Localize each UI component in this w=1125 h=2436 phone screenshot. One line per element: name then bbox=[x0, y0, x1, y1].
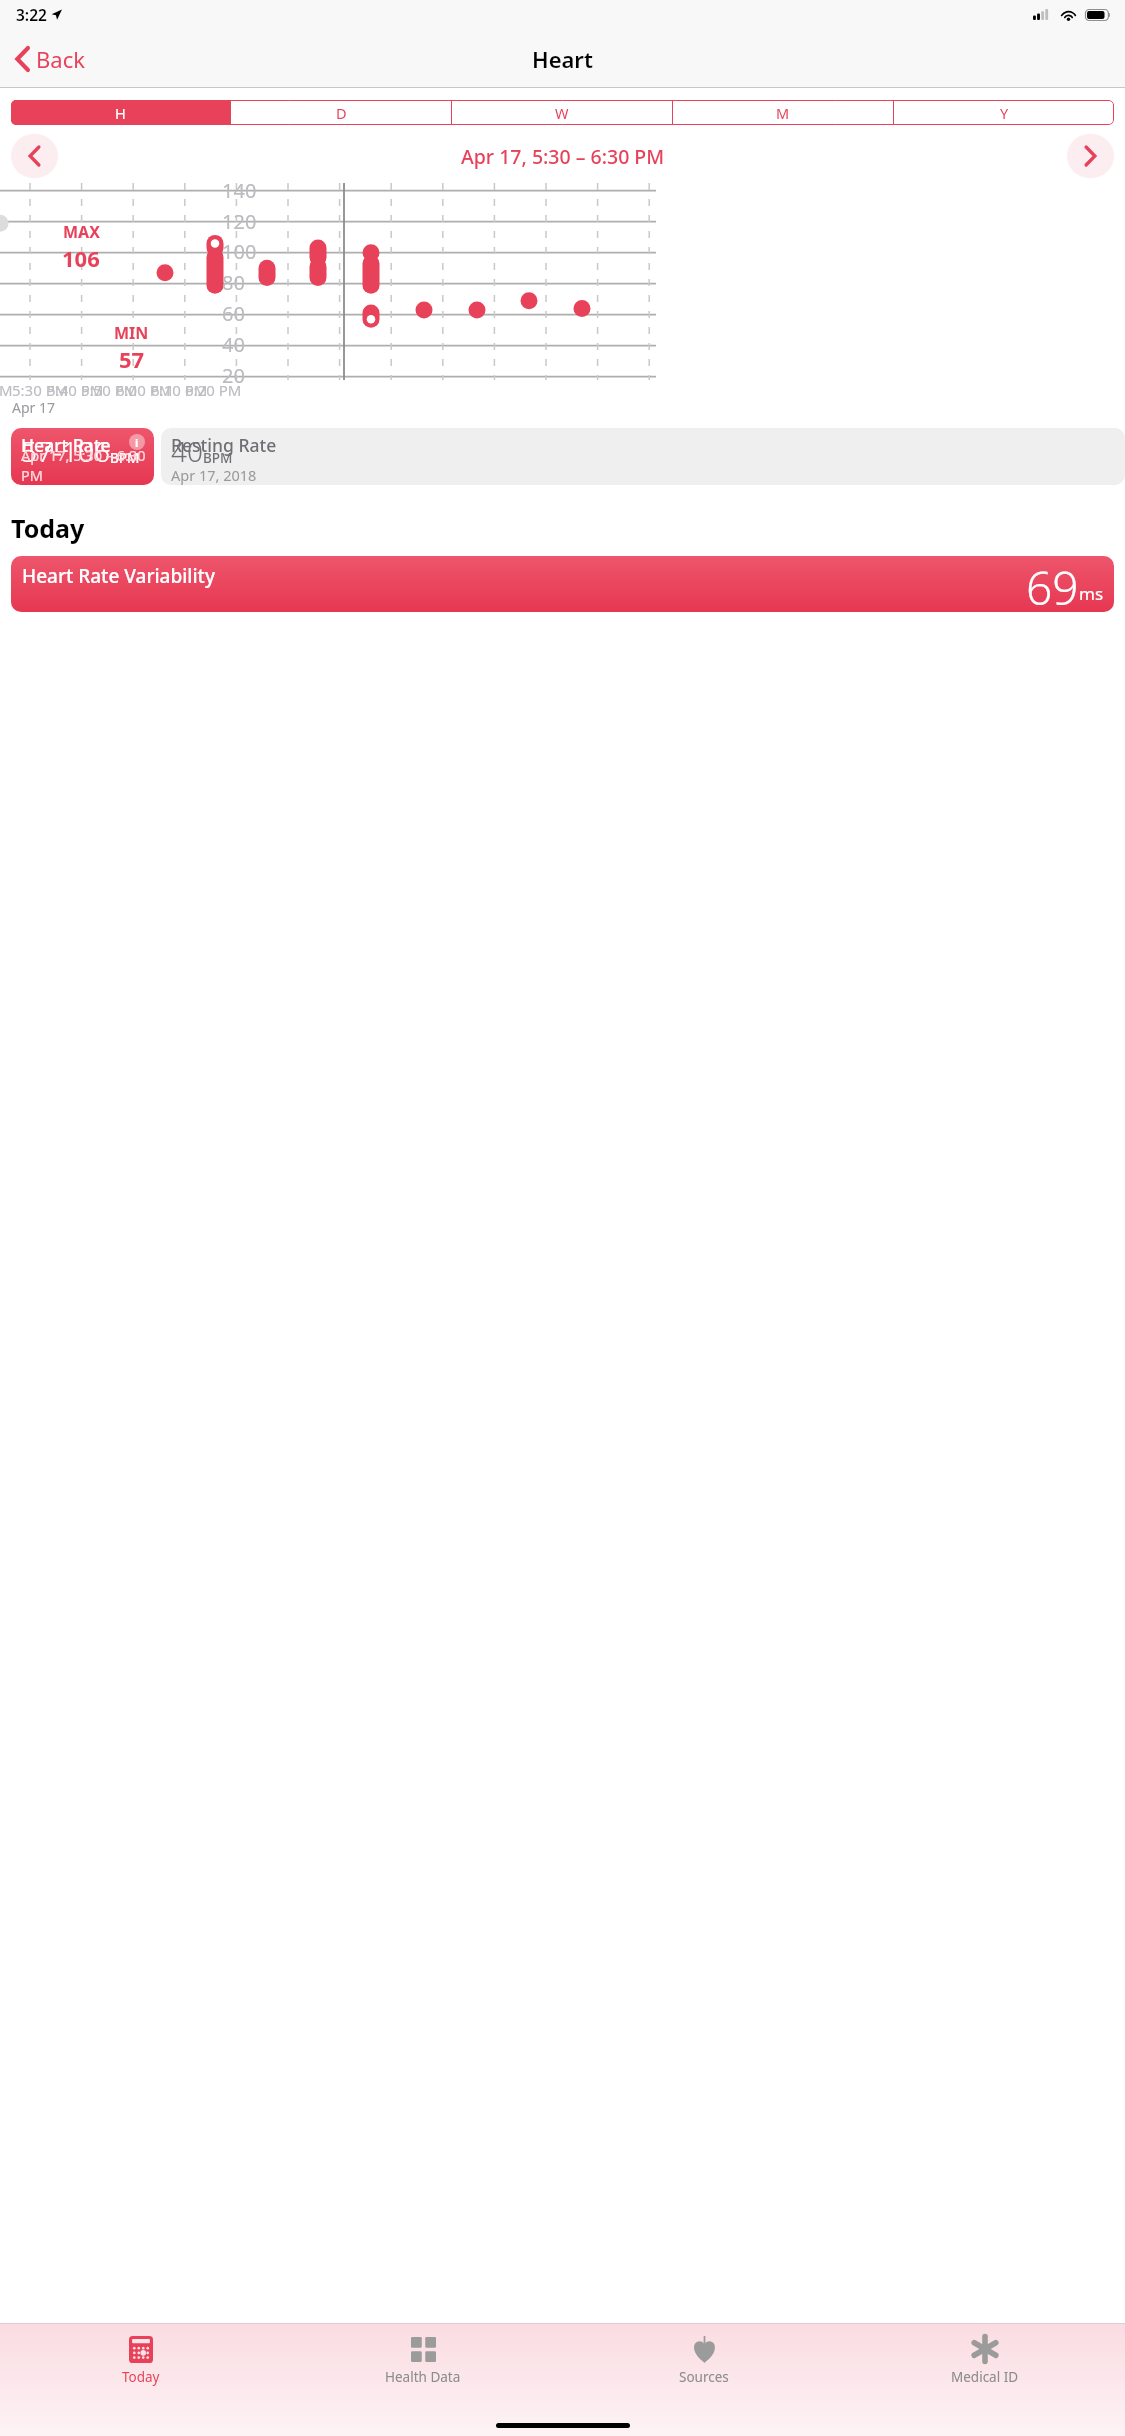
staticText: Heart bbox=[532, 44, 593, 74]
staticText: BPM bbox=[110, 449, 140, 467]
staticText: H bbox=[115, 103, 126, 123]
staticText: Medical ID bbox=[951, 2368, 1019, 2386]
button[interactable]: Next bbox=[1067, 134, 1114, 178]
staticText: 140 bbox=[222, 177, 257, 204]
staticText: 3:22 bbox=[16, 4, 47, 25]
staticText: Resting Rate bbox=[171, 433, 277, 457]
staticText: M bbox=[0, 380, 13, 397]
staticText: 20 bbox=[222, 362, 245, 389]
button[interactable]: H bbox=[11, 100, 230, 125]
staticText: Heart Rate bbox=[21, 433, 111, 457]
staticText: MIN bbox=[114, 322, 149, 344]
staticText: 6:10 PM bbox=[151, 380, 208, 397]
button[interactable]: Heart Rate bbox=[11, 428, 154, 485]
button[interactable]: Y bbox=[894, 100, 1114, 125]
staticText: 57 bbox=[119, 344, 145, 374]
staticText: ms bbox=[1079, 582, 1104, 605]
button[interactable]: W bbox=[452, 100, 672, 125]
staticText: 80 bbox=[222, 269, 245, 296]
staticText: Apr 17, 5:30 – 6:30 PM bbox=[461, 143, 665, 170]
button[interactable]: Info bbox=[129, 434, 145, 450]
staticText: 100 bbox=[222, 238, 257, 265]
staticText: 69 bbox=[1026, 556, 1079, 612]
button[interactable]: Medical ID bbox=[844, 2330, 1125, 2386]
staticText: 40 bbox=[222, 331, 245, 358]
staticText: 106 bbox=[62, 243, 100, 273]
staticText: Sources bbox=[679, 2368, 729, 2386]
staticText: 120 bbox=[222, 208, 257, 235]
staticText: Health Data bbox=[385, 2368, 461, 2386]
staticText: Today bbox=[11, 511, 85, 545]
staticText: Heart Rate Variability bbox=[22, 563, 215, 589]
button[interactable]: Back bbox=[8, 36, 95, 82]
button[interactable]: Health Data bbox=[282, 2330, 563, 2386]
staticText: D bbox=[336, 103, 347, 123]
button[interactable]: M bbox=[673, 100, 893, 125]
staticText: Apr 17, 5:30 – 6:30 PM bbox=[21, 445, 154, 485]
staticText: Apr 17 bbox=[12, 398, 55, 417]
staticText: MAX bbox=[63, 221, 100, 243]
button[interactable]: Sources bbox=[563, 2330, 844, 2386]
staticText: BPM bbox=[203, 449, 233, 467]
staticText: 57-106 bbox=[21, 432, 110, 470]
staticText: W bbox=[555, 103, 569, 123]
staticText: 6:00 PM bbox=[116, 380, 173, 397]
button[interactable]: Today bbox=[0, 2330, 282, 2386]
staticText: 5:50 PM bbox=[81, 380, 138, 397]
button[interactable]: Previous bbox=[11, 134, 58, 178]
staticText: Today bbox=[122, 2368, 160, 2386]
button[interactable]: D bbox=[231, 100, 451, 125]
staticText: 5:40 PM bbox=[47, 380, 104, 397]
staticText: 60 bbox=[222, 300, 245, 327]
button[interactable]: Heart Rate Variability bbox=[11, 556, 1114, 612]
staticText: Apr 17, 2018 bbox=[171, 465, 257, 485]
staticText: 40 bbox=[171, 432, 203, 470]
staticText: 6:20 PM bbox=[185, 380, 242, 397]
staticText: 5:30 PM bbox=[12, 380, 69, 397]
button[interactable]: Resting Rate bbox=[161, 428, 1125, 485]
staticText: Back bbox=[36, 44, 85, 74]
staticText: i bbox=[135, 435, 139, 450]
staticText: Y bbox=[1000, 103, 1009, 123]
staticText: M bbox=[776, 103, 790, 123]
